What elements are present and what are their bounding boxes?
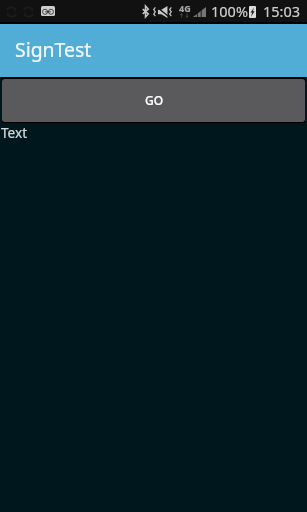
other: Sync xyxy=(23,6,34,18)
staticText: 15:03 xyxy=(263,1,301,21)
staticText: 4G xyxy=(179,2,191,14)
other: Ringer muted xyxy=(153,6,172,18)
other: Bluetooth xyxy=(142,6,149,17)
staticText: 100% xyxy=(211,1,248,21)
staticText: GO xyxy=(145,92,164,108)
other: Sync xyxy=(6,6,17,18)
staticText: SignTest xyxy=(15,36,92,62)
button[interactable]: GO xyxy=(2,79,305,122)
other: Voicemail xyxy=(41,6,55,16)
staticText: Text xyxy=(1,123,28,142)
